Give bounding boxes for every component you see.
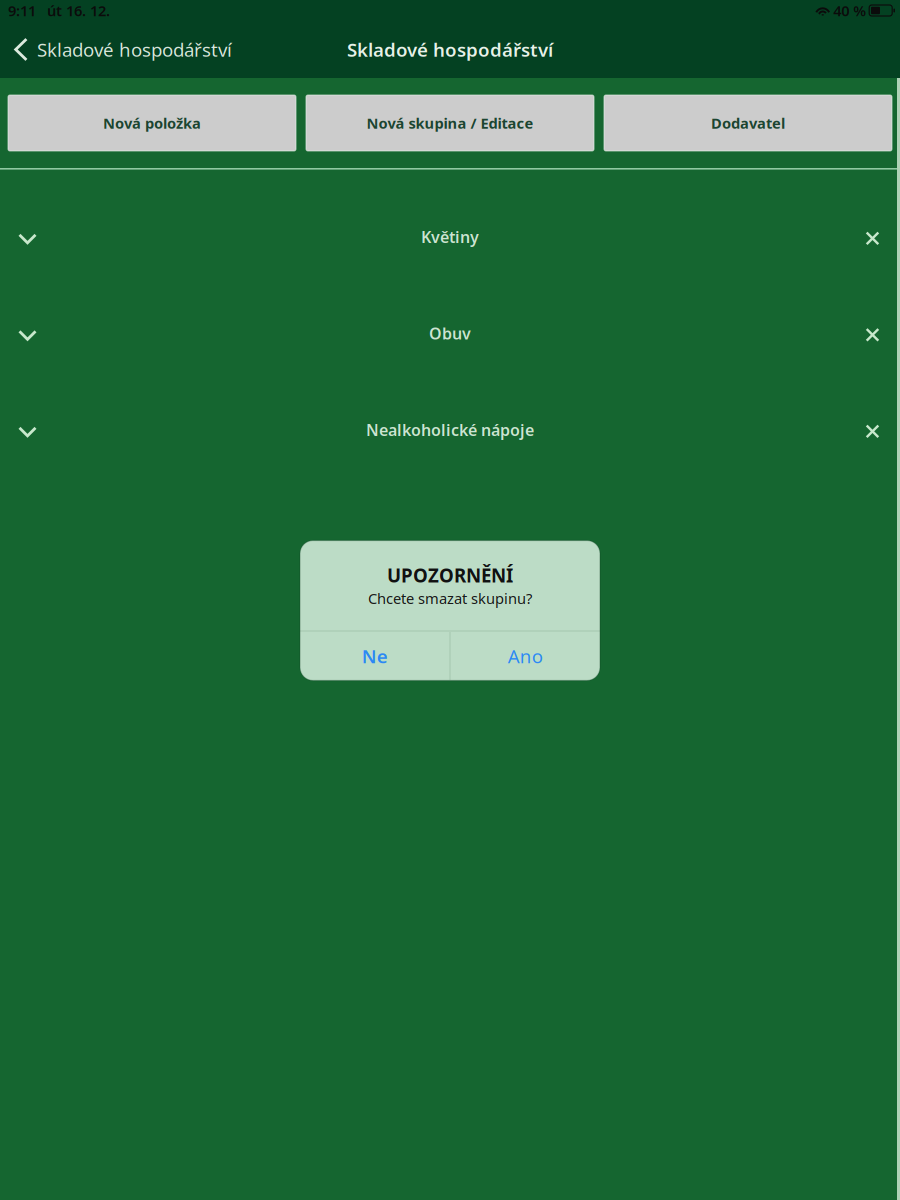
button[interactable]: Smazat Obuv xyxy=(845,303,900,363)
staticText: út 16. 12. xyxy=(47,1,110,20)
staticText: Nová položka xyxy=(103,113,201,133)
button[interactable]: Nová skupina / Editace xyxy=(306,95,594,151)
staticText: Dodavatel xyxy=(711,113,785,133)
button[interactable]: Dodavatel xyxy=(604,95,892,151)
button[interactable]: Ano xyxy=(450,632,600,680)
button[interactable]: Rozbalit Obuv xyxy=(0,303,55,363)
button[interactable]: Nová položka xyxy=(8,95,296,151)
staticText: Chcete smazat skupinu? xyxy=(368,589,532,608)
staticText: 40 % xyxy=(833,1,866,20)
staticText: Květiny xyxy=(421,226,479,247)
staticText: Skladové hospodářství xyxy=(347,37,553,62)
staticText: Nealkoholické nápoje xyxy=(366,419,534,440)
button[interactable]: Skladové hospodářství xyxy=(0,27,245,71)
staticText: UPOZORNĚNÍ xyxy=(387,563,513,588)
button[interactable]: Rozbalit Květiny xyxy=(0,207,55,267)
button[interactable]: Ne xyxy=(300,632,449,680)
button[interactable]: Rozbalit Nealkoholické nápoje xyxy=(0,400,55,460)
button[interactable]: Smazat Květiny xyxy=(845,207,900,267)
staticText: Ne xyxy=(362,644,388,668)
button[interactable]: Smazat Nealkoholické nápoje xyxy=(845,400,900,460)
staticText: Ano xyxy=(508,644,543,668)
staticText: 9:11 xyxy=(8,1,36,20)
staticText: Obuv xyxy=(429,323,471,344)
staticText: Nová skupina / Editace xyxy=(366,113,533,133)
staticText: Skladové hospodářství xyxy=(37,37,232,62)
